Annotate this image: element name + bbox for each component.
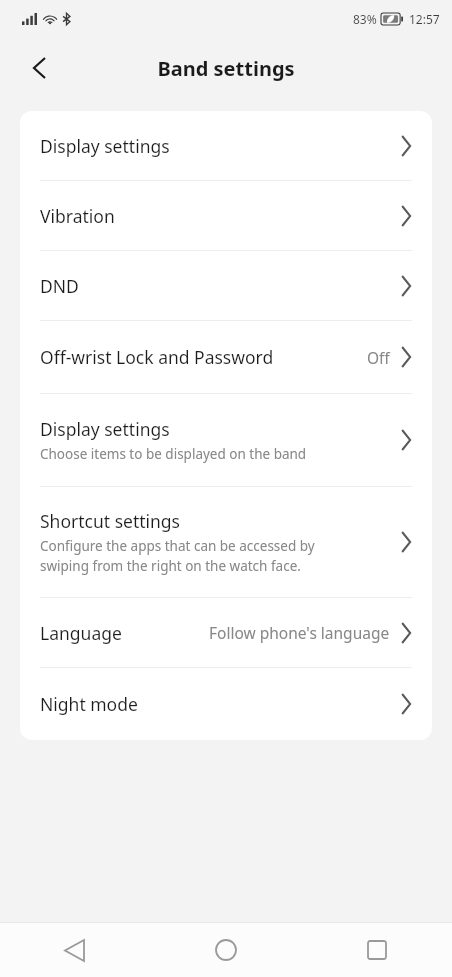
button[interactable]: Back [0,923,150,977]
staticText: Choose items to be displayed on the band [40,445,307,463]
button[interactable]: DND [20,251,432,320]
button[interactable]: Home [150,923,301,977]
staticText: Language [40,621,122,645]
button[interactable]: Language [20,598,432,667]
staticText: Off-wrist Lock and Password [40,345,274,369]
staticText: DND [40,274,79,298]
staticText: Display settings [40,417,170,441]
staticText: Follow phone's language [209,622,390,643]
button[interactable]: Night mode [20,668,432,740]
staticText: Off [367,347,390,368]
staticText: Vibration [40,204,115,228]
button[interactable]: Display settings [20,111,432,180]
staticText: Configure the apps that can be accessed … [40,537,315,575]
staticText: Night mode [40,692,138,716]
staticText: 83% [353,11,377,27]
button[interactable]: Display settings [20,394,432,486]
staticText: Display settings [40,134,170,158]
button[interactable]: Off-wrist Lock and Password [20,321,432,393]
button[interactable]: Back [16,45,62,91]
button[interactable]: Vibration [20,181,432,250]
button[interactable]: Shortcut settings [20,487,432,597]
staticText: 12:57 [409,11,440,27]
button[interactable]: Recent apps [301,923,452,977]
staticText: Band settings [157,55,295,82]
staticText: Shortcut settings [40,509,180,533]
